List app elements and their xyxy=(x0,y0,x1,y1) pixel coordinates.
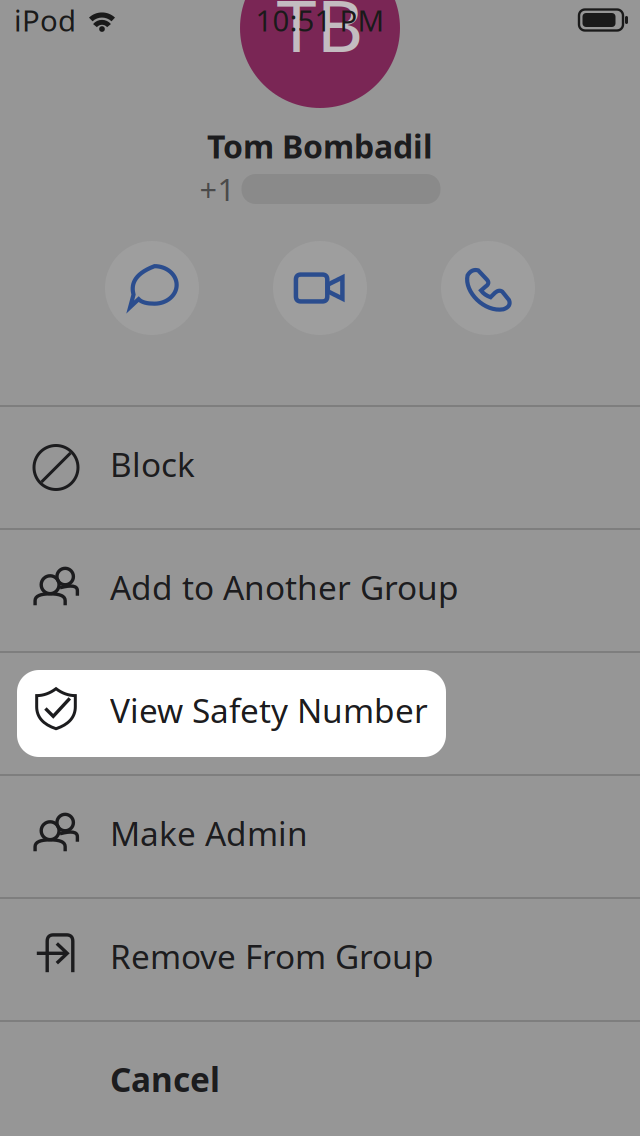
button[interactable]: Message xyxy=(105,241,199,335)
button[interactable]: Add to Another Group xyxy=(0,530,640,651)
button[interactable]: Remove From Group xyxy=(0,899,640,1020)
staticText: View Safety Number xyxy=(110,688,428,732)
staticText: 10:51 PM xyxy=(255,0,384,39)
staticText: Tom Bombadil xyxy=(207,125,433,167)
staticText: +1 xyxy=(199,169,235,209)
staticText: TB xyxy=(276,0,363,72)
button[interactable]: Make Admin xyxy=(0,776,640,897)
staticText: Make Admin xyxy=(110,811,308,855)
staticText: Remove From Group xyxy=(110,934,434,978)
button[interactable]: Block xyxy=(0,407,640,528)
button[interactable]: Video call xyxy=(273,241,367,335)
staticText: Block xyxy=(110,442,195,486)
button[interactable]: Cancel xyxy=(0,1022,640,1136)
staticText: iPod xyxy=(14,0,76,39)
staticText: Add to Another Group xyxy=(110,565,459,609)
button[interactable]: Voice call xyxy=(441,241,535,335)
staticText: Cancel xyxy=(110,1057,220,1101)
button[interactable]: View Safety Number xyxy=(0,653,640,774)
